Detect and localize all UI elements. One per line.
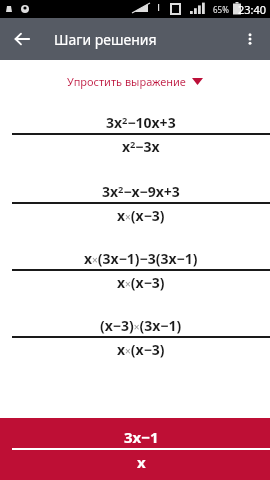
staticText: (x−3)×(3x−1): [100, 316, 182, 335]
staticText: x2−3x: [122, 137, 160, 156]
staticText: Шаги решения: [54, 30, 157, 49]
button[interactable]: More options: [232, 21, 268, 57]
staticText: x×(x−3): [117, 340, 165, 359]
staticText: 3x2−x−9x+3: [102, 182, 180, 201]
staticText: x×(3x−1)−3(3x−1): [84, 249, 198, 268]
staticText: 65%: [213, 4, 229, 15]
staticText: 3x−1: [124, 427, 159, 447]
button[interactable]: Back: [6, 23, 38, 55]
staticText: 3x2−10x+3: [106, 113, 176, 132]
staticText: x: [137, 452, 146, 472]
staticText: 23:40: [238, 2, 267, 17]
button[interactable]: Упростить выражение: [59, 72, 211, 91]
button[interactable]: 3x−1: [0, 418, 270, 480]
staticText: x×(x−3): [117, 273, 165, 292]
staticText: x×(x−3): [117, 206, 165, 225]
staticText: Упростить выражение: [67, 74, 186, 89]
